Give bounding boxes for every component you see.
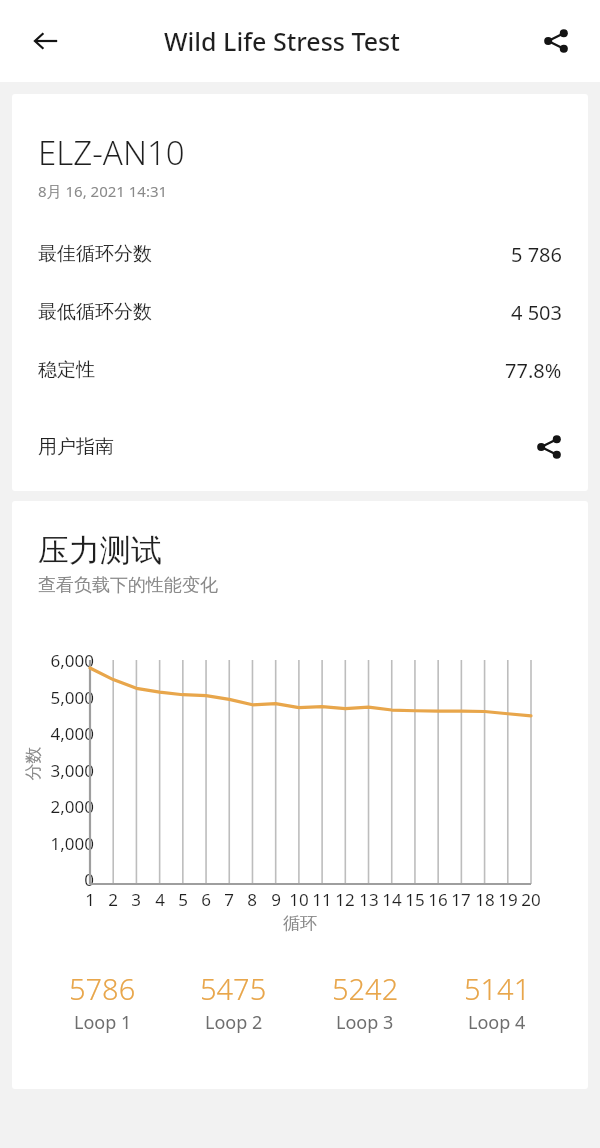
staticText: 5,000 xyxy=(50,686,94,709)
staticText: 5141 xyxy=(464,969,531,1008)
staticText: 14 xyxy=(382,888,402,911)
staticText: 20 xyxy=(521,888,541,911)
staticText: 16 xyxy=(428,888,448,911)
staticText: 查看负载下的性能变化 xyxy=(38,574,218,597)
staticText: Loop 1 xyxy=(74,1010,132,1035)
staticText: 2 xyxy=(108,888,118,911)
staticText: 最佳循环分数 xyxy=(38,242,152,266)
button[interactable]: 5475 xyxy=(177,951,290,1053)
staticText: Loop 2 xyxy=(205,1010,263,1035)
button[interactable]: 最低循环分数 xyxy=(12,283,588,341)
staticText: 8 xyxy=(247,888,257,911)
staticText: Wild Life Stress Test xyxy=(164,24,400,58)
staticText: 11 xyxy=(312,888,332,911)
staticText: 12 xyxy=(335,888,355,911)
button[interactable]: 5242 xyxy=(308,951,422,1053)
staticText: 2,000 xyxy=(50,795,94,818)
staticText: Loop 3 xyxy=(336,1010,394,1035)
staticText: 1,000 xyxy=(50,832,94,855)
button[interactable]: 5786 xyxy=(46,951,159,1053)
staticText: 最低循环分数 xyxy=(38,300,152,324)
staticText: 7 xyxy=(224,888,234,911)
button[interactable]: Share xyxy=(532,17,580,65)
staticText: 4,000 xyxy=(50,722,94,745)
staticText: 15 xyxy=(405,888,425,911)
button[interactable]: 最佳循环分数 xyxy=(12,225,588,283)
button[interactable]: 稳定性 xyxy=(12,341,588,399)
staticText: 18 xyxy=(475,888,495,911)
staticText: 4 503 xyxy=(511,299,562,326)
staticText: 3 xyxy=(131,888,141,911)
staticText: 用户指南 xyxy=(38,435,114,459)
staticText: 分数 xyxy=(22,746,43,780)
staticText: 压力测试 xyxy=(38,531,162,570)
staticText: 8月 16, 2021 14:31 xyxy=(38,181,168,201)
staticText: 0 xyxy=(84,868,94,891)
staticText: 4 xyxy=(155,888,165,911)
staticText: 1 xyxy=(85,888,95,911)
button[interactable]: Back xyxy=(22,17,70,65)
staticText: 19 xyxy=(498,888,518,911)
staticText: 77.8% xyxy=(505,357,562,384)
staticText: 6 xyxy=(201,888,211,911)
staticText: 17 xyxy=(451,888,471,911)
staticText: ELZ-AN10 xyxy=(38,130,185,175)
staticText: 13 xyxy=(359,888,379,911)
button[interactable]: 5141 xyxy=(440,951,554,1053)
staticText: 5 786 xyxy=(511,241,562,268)
button[interactable]: 用户指南 xyxy=(12,419,588,475)
staticText: 5 xyxy=(178,888,188,911)
staticText: 6,000 xyxy=(50,649,94,672)
staticText: 3,000 xyxy=(50,759,94,782)
staticText: 9 xyxy=(271,888,281,911)
staticText: 5242 xyxy=(332,969,399,1008)
staticText: Loop 4 xyxy=(468,1010,526,1035)
staticText: 稳定性 xyxy=(38,358,95,382)
staticText: 5786 xyxy=(69,969,136,1008)
staticText: 5475 xyxy=(200,969,267,1008)
staticText: 10 xyxy=(289,888,309,911)
staticText: 循环 xyxy=(283,913,317,934)
